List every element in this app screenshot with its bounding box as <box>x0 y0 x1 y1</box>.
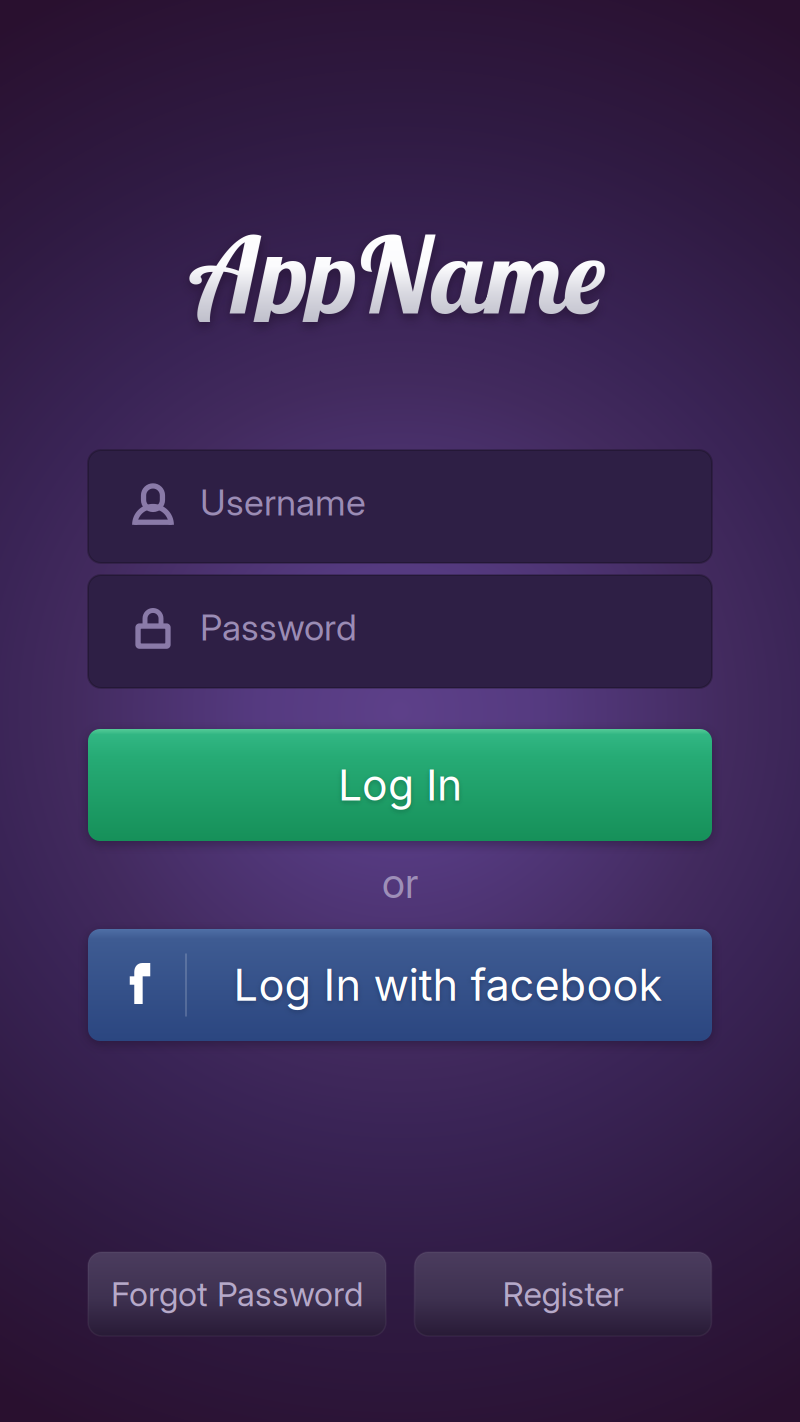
button[interactable]: Log In with facebook <box>88 929 712 1041</box>
button[interactable]: Forgot Password <box>88 1252 386 1336</box>
button[interactable]: Log In <box>88 729 712 841</box>
staticText: Username <box>200 481 366 524</box>
staticText: Log In with facebook <box>233 959 662 1011</box>
button[interactable]: Username <box>88 450 712 563</box>
staticText: Log In <box>338 759 462 811</box>
staticText: or <box>382 858 418 908</box>
button[interactable]: Register <box>414 1252 711 1336</box>
staticText: Password <box>200 606 357 649</box>
staticText: Register <box>502 1274 623 1314</box>
button[interactable]: Password <box>88 575 712 688</box>
staticText: Forgot Password <box>111 1274 363 1314</box>
